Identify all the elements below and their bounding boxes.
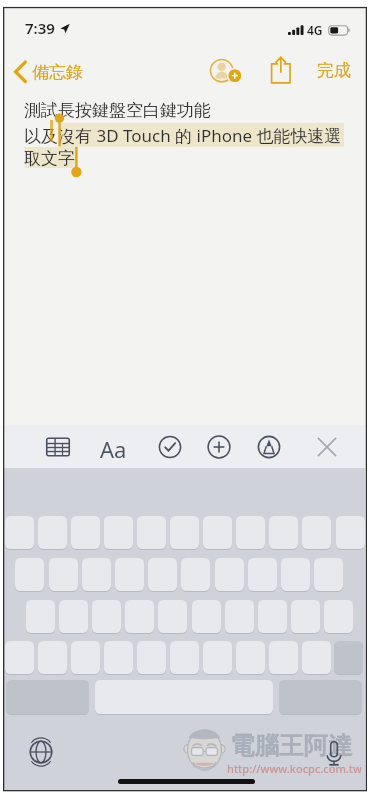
button[interactable] — [137, 641, 166, 674]
button[interactable] — [203, 516, 232, 549]
button[interactable] — [314, 558, 343, 591]
button[interactable] — [71, 641, 100, 674]
button[interactable] — [15, 558, 44, 591]
button[interactable] — [225, 600, 254, 633]
button[interactable] — [38, 641, 67, 674]
button[interactable]: Switch keyboard — [26, 737, 56, 767]
button[interactable]: Table — [44, 433, 72, 461]
button[interactable] — [258, 600, 287, 633]
button[interactable] — [125, 600, 154, 633]
button[interactable] — [148, 558, 177, 591]
staticText: http://www.kocpc.com.tw — [227, 761, 362, 776]
button[interactable] — [302, 641, 331, 674]
button[interactable] — [269, 641, 298, 674]
button[interactable] — [236, 516, 265, 549]
button[interactable] — [38, 516, 67, 549]
button[interactable] — [203, 641, 232, 674]
button[interactable]: Hide keyboard — [313, 433, 341, 461]
button[interactable] — [291, 600, 320, 633]
staticText: Aa — [100, 434, 127, 460]
staticText: 7:39 — [25, 18, 55, 38]
button[interactable]: Location active — [60, 23, 71, 34]
staticText: 取文字 — [24, 148, 75, 169]
button[interactable] — [181, 558, 210, 591]
staticText: 測試長按鍵盤空白鍵功能 — [24, 100, 211, 121]
button[interactable]: Dictate — [319, 737, 349, 767]
button[interactable] — [324, 600, 353, 633]
button[interactable] — [158, 600, 187, 633]
button[interactable]: Add attachment — [205, 433, 233, 461]
button[interactable] — [49, 558, 78, 591]
staticText: 以及沒有 3D Touch 的 iPhone 也能快速選 — [24, 124, 342, 147]
button[interactable]: 完成 — [310, 54, 358, 86]
staticText: 備忘錄 — [32, 62, 83, 83]
button[interactable] — [104, 641, 133, 674]
button[interactable] — [104, 516, 133, 549]
button[interactable] — [336, 516, 365, 549]
button[interactable] — [236, 641, 265, 674]
button[interactable]: Add people — [204, 53, 244, 89]
staticText: 電腦王阿達 — [230, 730, 353, 761]
button[interactable] — [170, 516, 199, 549]
button[interactable] — [59, 600, 88, 633]
button[interactable] — [302, 516, 331, 549]
button[interactable]: Battery — [328, 25, 351, 36]
button[interactable] — [248, 558, 277, 591]
button[interactable] — [170, 641, 199, 674]
button[interactable] — [192, 600, 221, 633]
button[interactable]: Markup — [255, 433, 283, 461]
button[interactable] — [5, 641, 34, 674]
button[interactable] — [82, 558, 111, 591]
button[interactable] — [92, 600, 121, 633]
staticText: 完成 — [317, 60, 351, 81]
button[interactable] — [26, 600, 55, 633]
button[interactable]: Checklist — [156, 433, 184, 461]
button[interactable] — [281, 558, 310, 591]
staticText: 4G — [307, 22, 323, 38]
button[interactable] — [5, 516, 34, 549]
button[interactable]: 備忘錄 — [10, 55, 81, 89]
button[interactable]: Share — [266, 52, 296, 88]
button[interactable] — [71, 516, 100, 549]
button[interactable] — [269, 516, 298, 549]
button[interactable] — [215, 558, 244, 591]
button[interactable] — [137, 516, 166, 549]
button[interactable]: Cellular signal — [288, 25, 305, 36]
button[interactable] — [115, 558, 144, 591]
button[interactable]: Aa — [97, 434, 129, 460]
